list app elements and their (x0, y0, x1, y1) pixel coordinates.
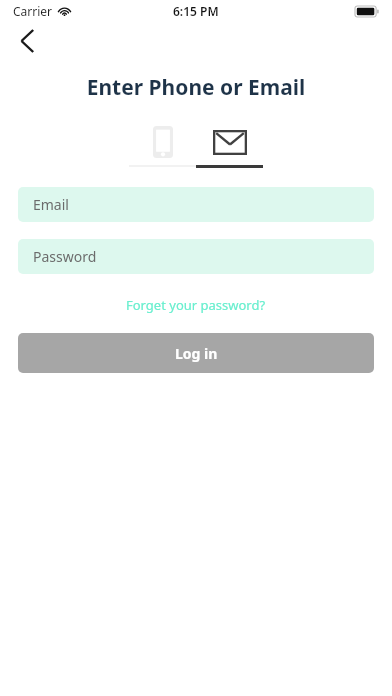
staticText: 6:15 PM (173, 3, 219, 19)
button[interactable]: Phone (129, 119, 196, 165)
button[interactable]: Back (6, 24, 48, 58)
button[interactable]: Password (18, 239, 374, 274)
staticText: Carrier (13, 3, 53, 19)
button[interactable]: Email (18, 187, 374, 222)
staticText: Forget your password? (126, 296, 266, 314)
staticText: Email (33, 195, 69, 214)
button[interactable]: Log in (18, 333, 374, 373)
staticText: Enter Phone or Email (0, 73, 392, 102)
staticText: Password (33, 247, 97, 266)
button[interactable]: Email (196, 119, 263, 165)
staticText: Log in (175, 344, 218, 363)
button[interactable]: Forget your password? (0, 294, 392, 316)
